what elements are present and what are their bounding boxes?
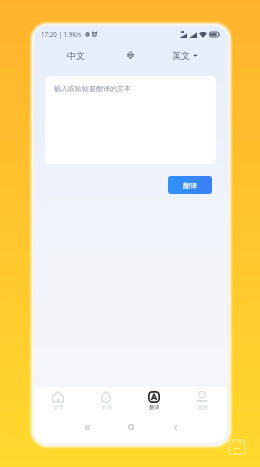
button[interactable]: 翻译 bbox=[168, 176, 212, 194]
button[interactable]: 单词 bbox=[82, 387, 130, 415]
staticText: 单词 bbox=[101, 404, 112, 411]
button[interactable]: 首页 bbox=[34, 387, 82, 415]
button[interactable]: Back bbox=[153, 420, 197, 434]
staticText: 英文 bbox=[172, 50, 190, 61]
staticText: 翻译 bbox=[183, 181, 197, 190]
button[interactable]: Recents bbox=[65, 420, 109, 434]
button[interactable]: 输入或粘贴要翻译的文本 bbox=[45, 76, 216, 164]
button[interactable]: Home bbox=[109, 420, 153, 434]
staticText: 翻译 bbox=[149, 404, 160, 411]
button[interactable]: 翻译 bbox=[130, 387, 178, 415]
staticText: 17:20 | 1.9K/s bbox=[41, 30, 82, 38]
staticText: 我的 bbox=[197, 404, 208, 411]
staticText: 中文 bbox=[67, 50, 85, 61]
staticText: 输入或粘贴要翻译的文本 bbox=[54, 84, 131, 93]
staticText: 首页 bbox=[53, 404, 64, 411]
button[interactable]: 中文 bbox=[34, 42, 117, 68]
button[interactable]: Swap languages bbox=[117, 42, 143, 68]
button[interactable]: 我的 bbox=[178, 387, 226, 415]
button[interactable]: 英文 bbox=[143, 42, 227, 68]
